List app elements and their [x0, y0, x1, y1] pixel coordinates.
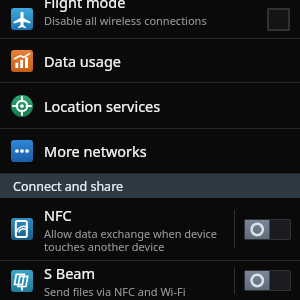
button[interactable]: Flight mode checkbox	[265, 6, 291, 32]
button[interactable]: Toggle switch, on	[244, 270, 291, 291]
staticText: Disable all wireless connections	[44, 13, 207, 28]
staticText: Location services	[44, 96, 161, 116]
staticText: Send files via NFC and Wi-Fi	[44, 284, 186, 299]
button[interactable]: NFC	[0, 198, 300, 260]
button[interactable]: Location services	[0, 83, 300, 128]
button[interactable]: Flight mode	[0, 0, 300, 38]
staticText: S Beam	[44, 263, 96, 283]
staticText: Connect and share	[13, 178, 124, 195]
button[interactable]: Toggle switch, on	[244, 219, 291, 240]
staticText: Data usage	[44, 51, 121, 71]
staticText: More networks	[44, 141, 147, 161]
staticText: Allow data exchange when device touches …	[44, 226, 218, 254]
staticText: NFC	[44, 205, 72, 225]
staticText: Flight mode	[44, 0, 126, 12]
button[interactable]: More networks	[0, 129, 300, 173]
button[interactable]: S Beam	[0, 261, 300, 300]
button[interactable]: Data usage	[0, 39, 300, 82]
